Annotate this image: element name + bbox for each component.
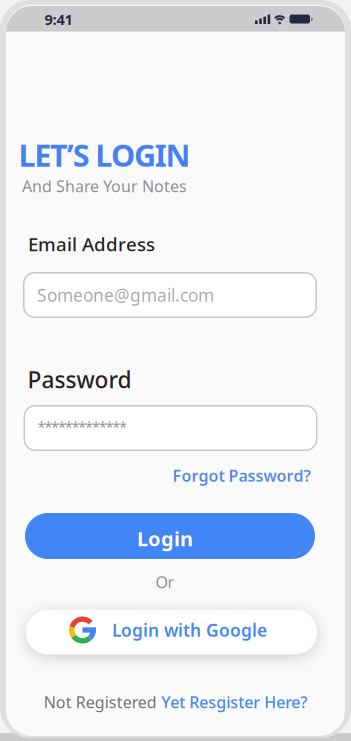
staticText: Yet Resgister Here? (161, 691, 307, 713)
button[interactable]: Login (25, 513, 315, 559)
staticText: Or (155, 571, 174, 593)
staticText: LET’S LOGIN (18, 134, 190, 175)
staticText: Not Registered (44, 691, 157, 713)
button[interactable]: Someone@gmail.com (23, 272, 317, 318)
staticText: And Share Your Notes (22, 175, 187, 197)
staticText: Forgot Password? (172, 465, 310, 486)
staticText: ************* (37, 417, 127, 436)
staticText: Login with Google (112, 618, 267, 641)
button[interactable]: ************* (23, 405, 317, 451)
button[interactable]: Not Registered (44, 691, 307, 713)
button[interactable]: Login with Google (25, 609, 318, 655)
staticText: 9:41 (44, 9, 72, 29)
staticText: Password (27, 364, 131, 395)
staticText: Someone@gmail.com (37, 283, 214, 306)
staticText: Email Address (28, 231, 155, 256)
button[interactable]: Forgot Password? (172, 465, 310, 486)
staticText: Login (137, 525, 193, 552)
